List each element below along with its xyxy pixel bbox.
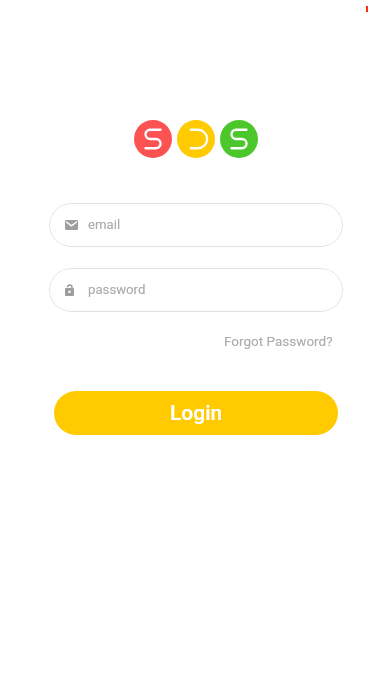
other: S: [134, 120, 172, 158]
other: S: [220, 120, 258, 158]
other: Password: [65, 284, 74, 296]
staticText: password: [88, 282, 146, 297]
button[interactable]: Email: [49, 203, 343, 247]
other: Email: [65, 220, 78, 230]
staticText: Login: [170, 401, 223, 426]
button[interactable]: Password: [49, 268, 343, 312]
button[interactable]: Forgot Password?: [218, 328, 339, 354]
other: O: [177, 120, 215, 158]
staticText: email: [88, 217, 121, 232]
button[interactable]: Login: [54, 391, 338, 435]
